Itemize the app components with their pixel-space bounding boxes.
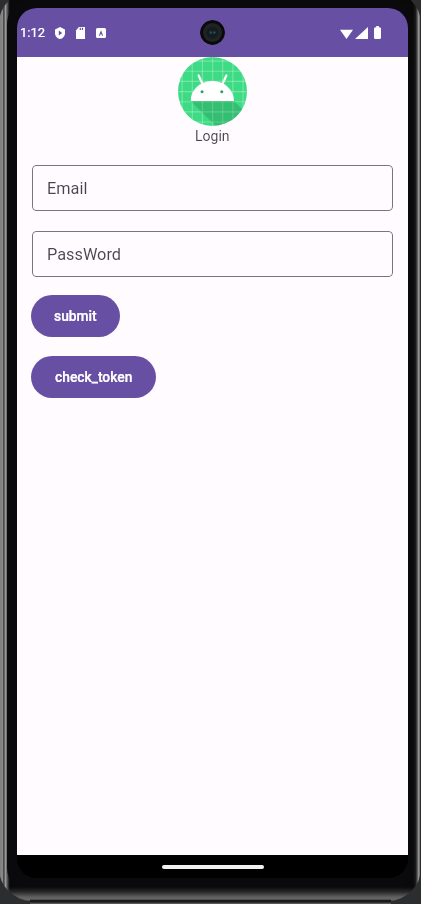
staticText: Login xyxy=(195,128,230,144)
staticText: PassWord xyxy=(47,245,121,264)
button[interactable]: PassWord xyxy=(32,231,393,277)
button[interactable]: submit xyxy=(31,295,120,337)
button[interactable]: Email xyxy=(32,165,393,211)
staticText: check_token xyxy=(55,369,133,385)
button[interactable]: check_token xyxy=(31,356,156,398)
staticText: Email xyxy=(47,179,88,198)
staticText: 1:12 xyxy=(20,25,46,40)
staticText: submit xyxy=(54,308,97,324)
